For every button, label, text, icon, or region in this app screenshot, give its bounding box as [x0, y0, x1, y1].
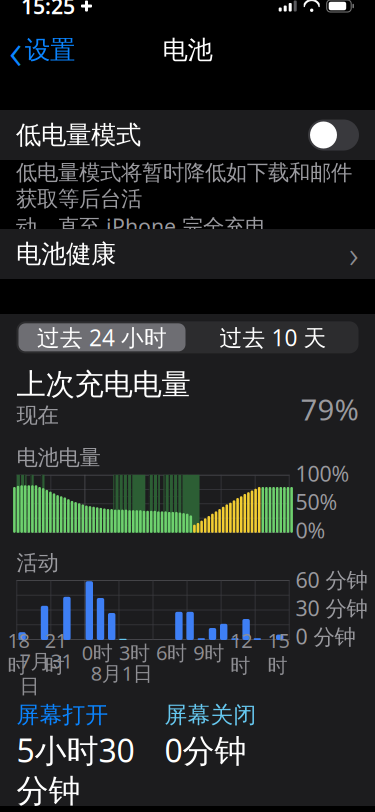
button[interactable]: 电池健康 — [0, 229, 375, 279]
staticText: 0 分钟 — [295, 622, 355, 650]
staticText: 低电量模式将暂时降低如下载和邮件获取等后台活 动，直至 iPhone 完全充电。 — [16, 160, 352, 240]
staticText: 8月1日 — [91, 660, 153, 686]
staticText: 电池电量 — [16, 445, 100, 471]
staticText: 9时 — [193, 639, 224, 666]
staticText: 15时 — [267, 627, 289, 678]
staticText: 过去 10 天 — [219, 322, 326, 352]
staticText: 6时 — [156, 639, 187, 666]
staticText: 过去 24 小时 — [37, 322, 167, 352]
staticText: 0时 — [82, 639, 113, 666]
staticText: 79% — [300, 390, 358, 429]
staticText: 设置 — [25, 34, 75, 65]
staticText: 7月31日 — [19, 647, 72, 698]
button[interactable]: 低电量模式 — [0, 110, 375, 160]
staticText: 12时 — [230, 627, 252, 678]
button[interactable]: 过去 24 小时 — [16, 321, 187, 353]
staticText: 15:25 — [21, 0, 75, 20]
staticText: 电池 — [162, 34, 212, 65]
staticText: 低电量模式 — [16, 119, 141, 150]
staticText: 电池健康 — [16, 238, 116, 269]
staticText: 3时 — [119, 639, 150, 666]
staticText: 60 分钟 — [295, 565, 367, 594]
staticText: › — [349, 230, 359, 278]
staticText: 5小时30分钟 — [16, 729, 134, 811]
staticText: 上次充电电量 — [16, 366, 190, 402]
staticText: 30 分钟 — [295, 594, 367, 622]
staticText: 21时 — [45, 627, 67, 678]
staticText: 现在 — [16, 402, 58, 429]
staticText: ‹ — [9, 16, 22, 84]
staticText: 100% — [295, 459, 349, 488]
staticText: 0% — [295, 516, 325, 544]
staticText: 18时 — [7, 627, 29, 678]
staticText: 活动 — [16, 550, 58, 576]
staticText: 屏幕关闭 — [164, 701, 256, 729]
button[interactable]: 过去 10 天 — [187, 321, 358, 353]
staticText: 屏幕打开 — [16, 701, 108, 729]
staticText: 0分钟 — [164, 729, 246, 771]
staticText: 50% — [295, 488, 337, 516]
button[interactable]: ‹ — [0, 28, 83, 72]
